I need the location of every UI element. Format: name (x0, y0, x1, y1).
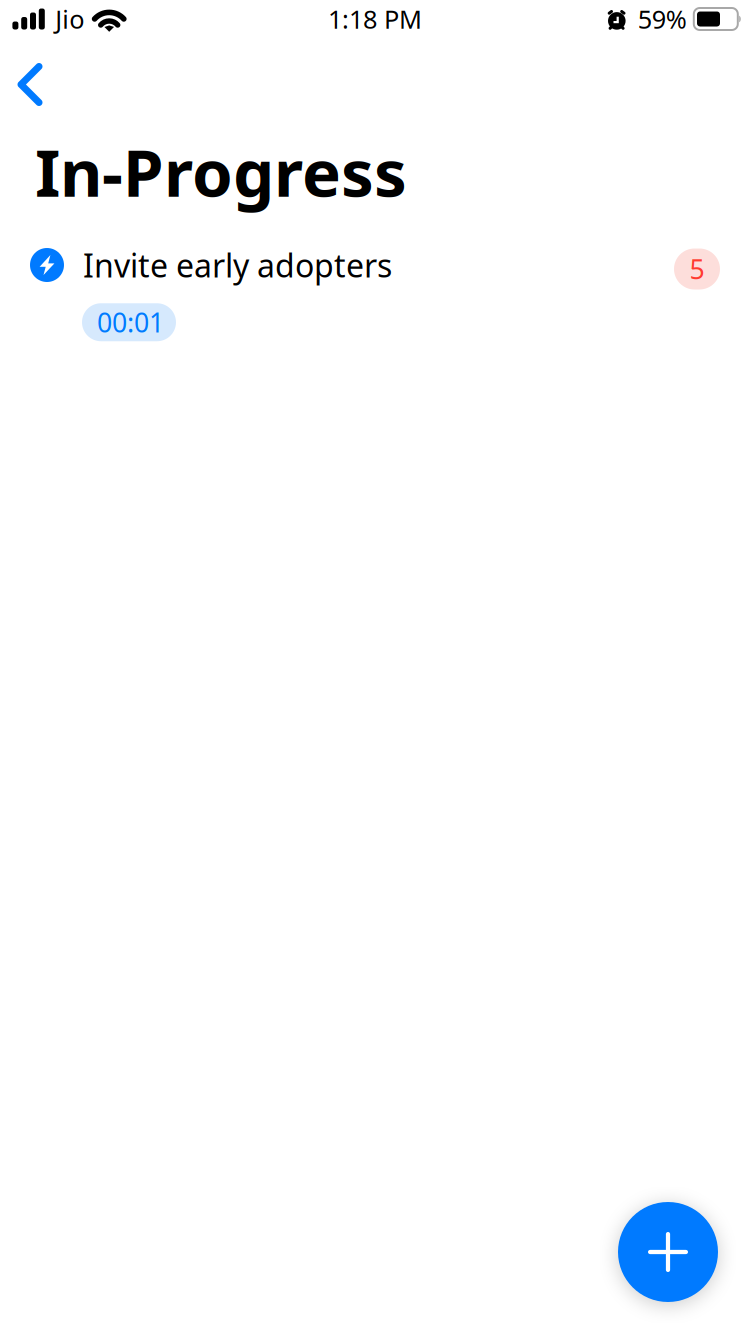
staticText: 1:18 PM (328, 2, 422, 36)
staticText: 00:01 (97, 304, 164, 340)
button[interactable]: Invite early adopters (30, 244, 720, 286)
staticText: 5 (689, 251, 704, 287)
staticText: 59% (638, 2, 687, 36)
staticText: Invite early adopters (83, 244, 392, 286)
button[interactable]: 00:01 (82, 303, 176, 341)
staticText: Jio (55, 2, 84, 36)
staticText: In-Progress (35, 128, 407, 215)
button[interactable]: Back (0, 38, 66, 109)
button[interactable]: Add task (618, 1202, 718, 1302)
